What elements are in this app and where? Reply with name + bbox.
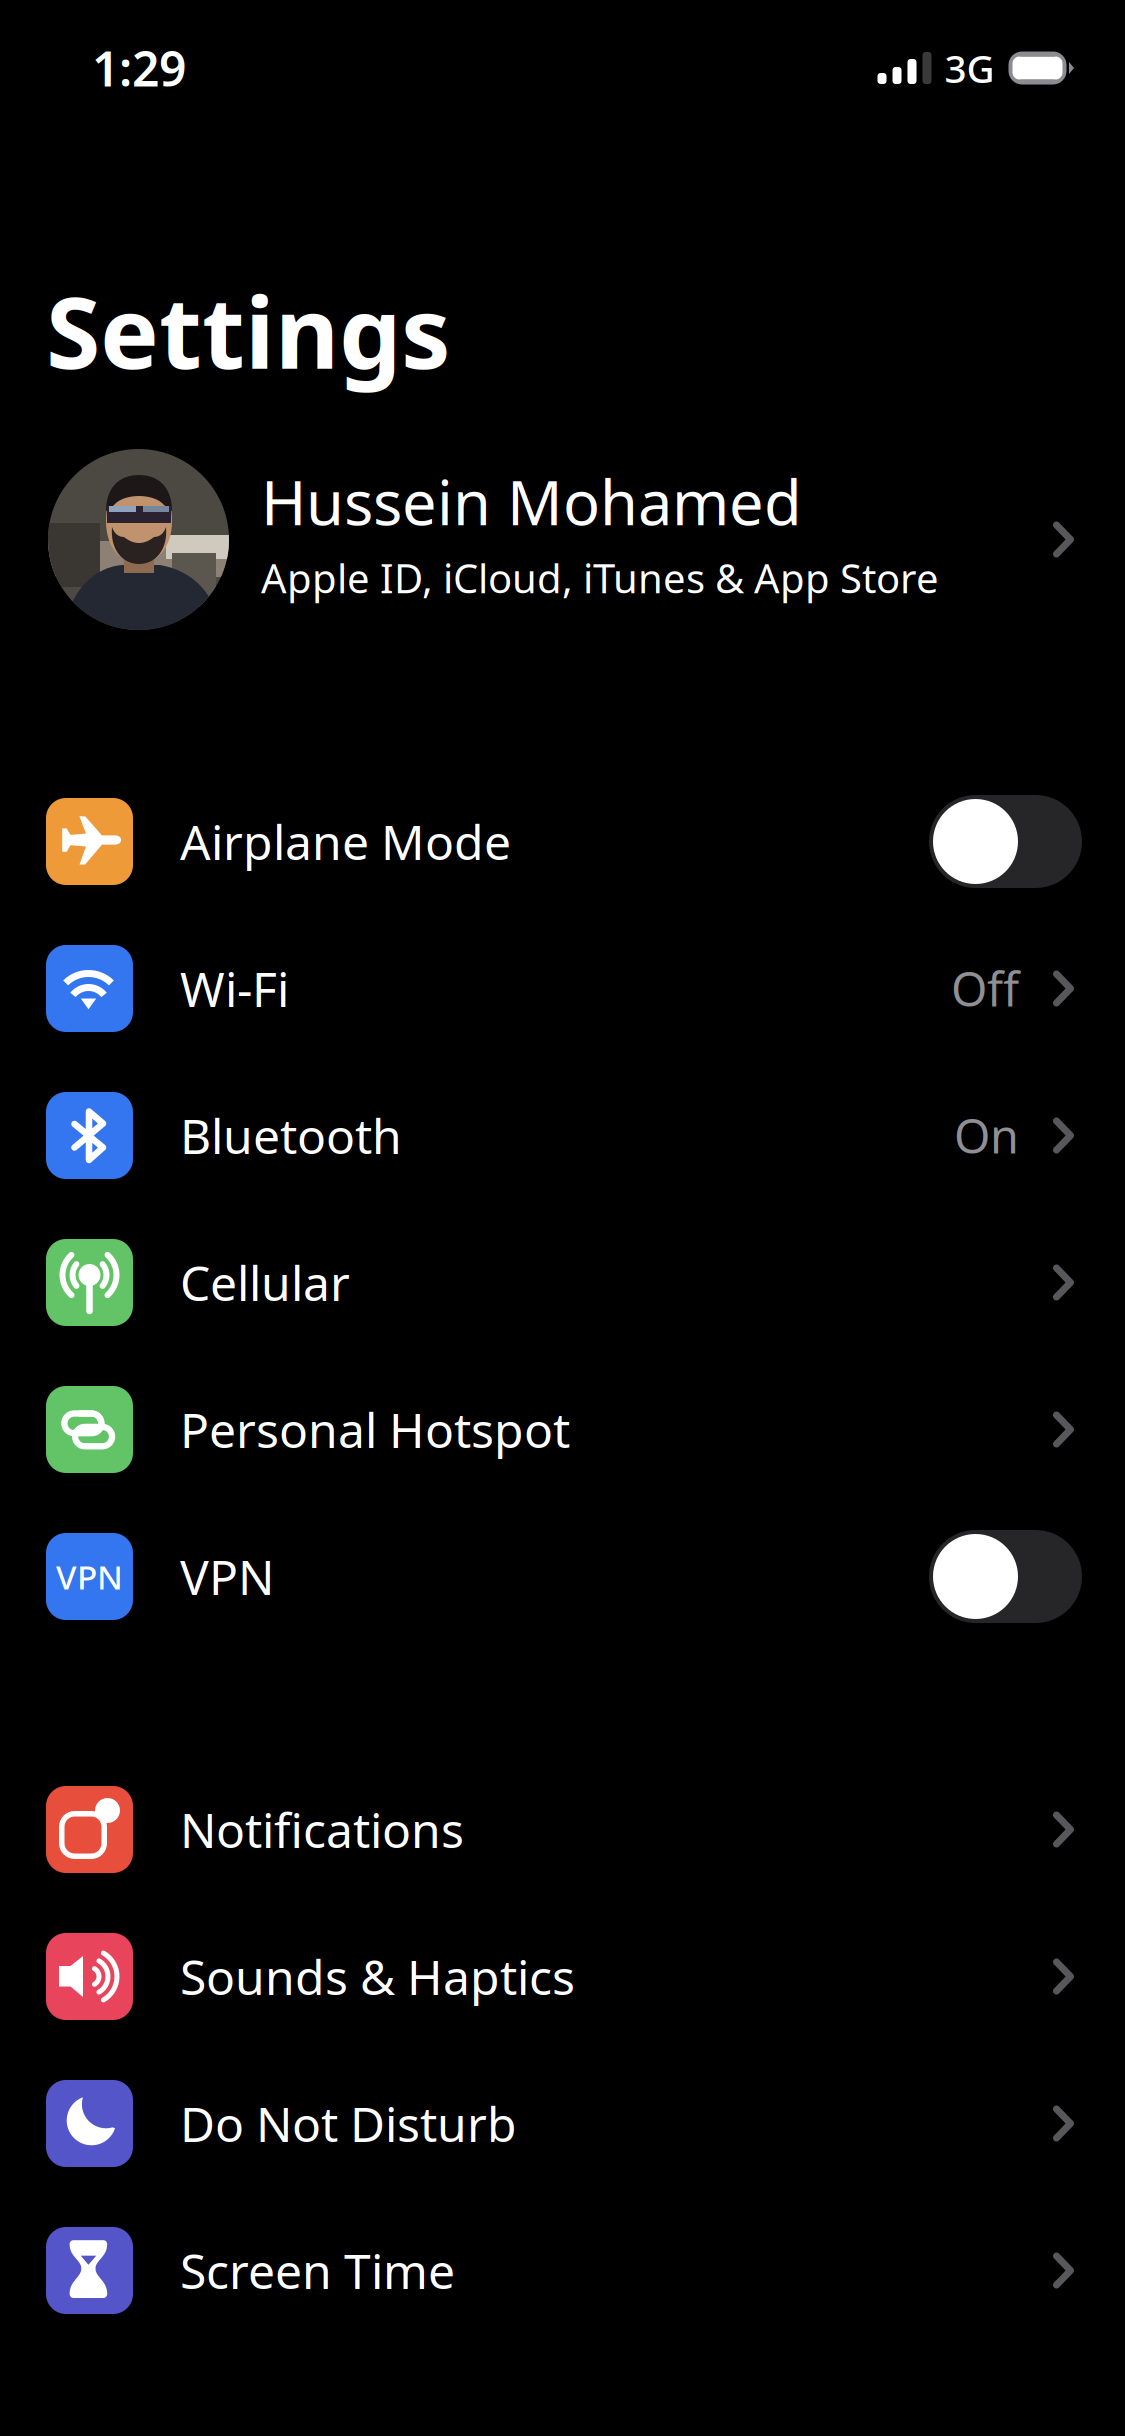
button[interactable]: Do Not Disturb — [0, 2050, 1125, 2197]
staticText: VPN — [56, 1554, 123, 1599]
staticText: On — [954, 1104, 1019, 1166]
staticText: Do Not Disturb — [180, 2092, 517, 2155]
staticText: Cellular — [180, 1251, 350, 1314]
button[interactable]: Sounds & Haptics — [0, 1903, 1125, 2050]
staticText: Personal Hotspot — [180, 1398, 570, 1461]
staticText: Airplane Mode — [180, 810, 511, 873]
button[interactable]: Notifications — [0, 1756, 1125, 1903]
button[interactable]: Cellular — [0, 1209, 1125, 1356]
staticText: Apple ID, iCloud, iTunes & App Store — [261, 551, 939, 604]
button[interactable]: Hussein Mohamed — [0, 449, 1125, 630]
button[interactable]: Wi-Fi — [0, 915, 1125, 1062]
staticText: Bluetooth — [180, 1104, 402, 1167]
staticText: Wi-Fi — [180, 957, 289, 1020]
staticText: Settings — [46, 265, 451, 396]
staticText: VPN — [180, 1545, 274, 1608]
staticText: Hussein Mohamed — [261, 461, 802, 542]
staticText: 3G — [944, 42, 994, 94]
staticText: 1:29 — [92, 36, 186, 100]
staticText: Notifications — [180, 1798, 464, 1861]
button[interactable]: Airplane Mode — [0, 768, 1125, 915]
button[interactable]: Bluetooth — [0, 1062, 1125, 1209]
button[interactable]: VPN — [0, 1503, 1125, 1650]
staticText: Off — [951, 957, 1019, 1019]
button[interactable]: Personal Hotspot — [0, 1356, 1125, 1503]
staticText: Screen Time — [180, 2239, 455, 2302]
button[interactable]: Screen Time — [0, 2197, 1125, 2344]
staticText: Sounds & Haptics — [180, 1945, 575, 2008]
